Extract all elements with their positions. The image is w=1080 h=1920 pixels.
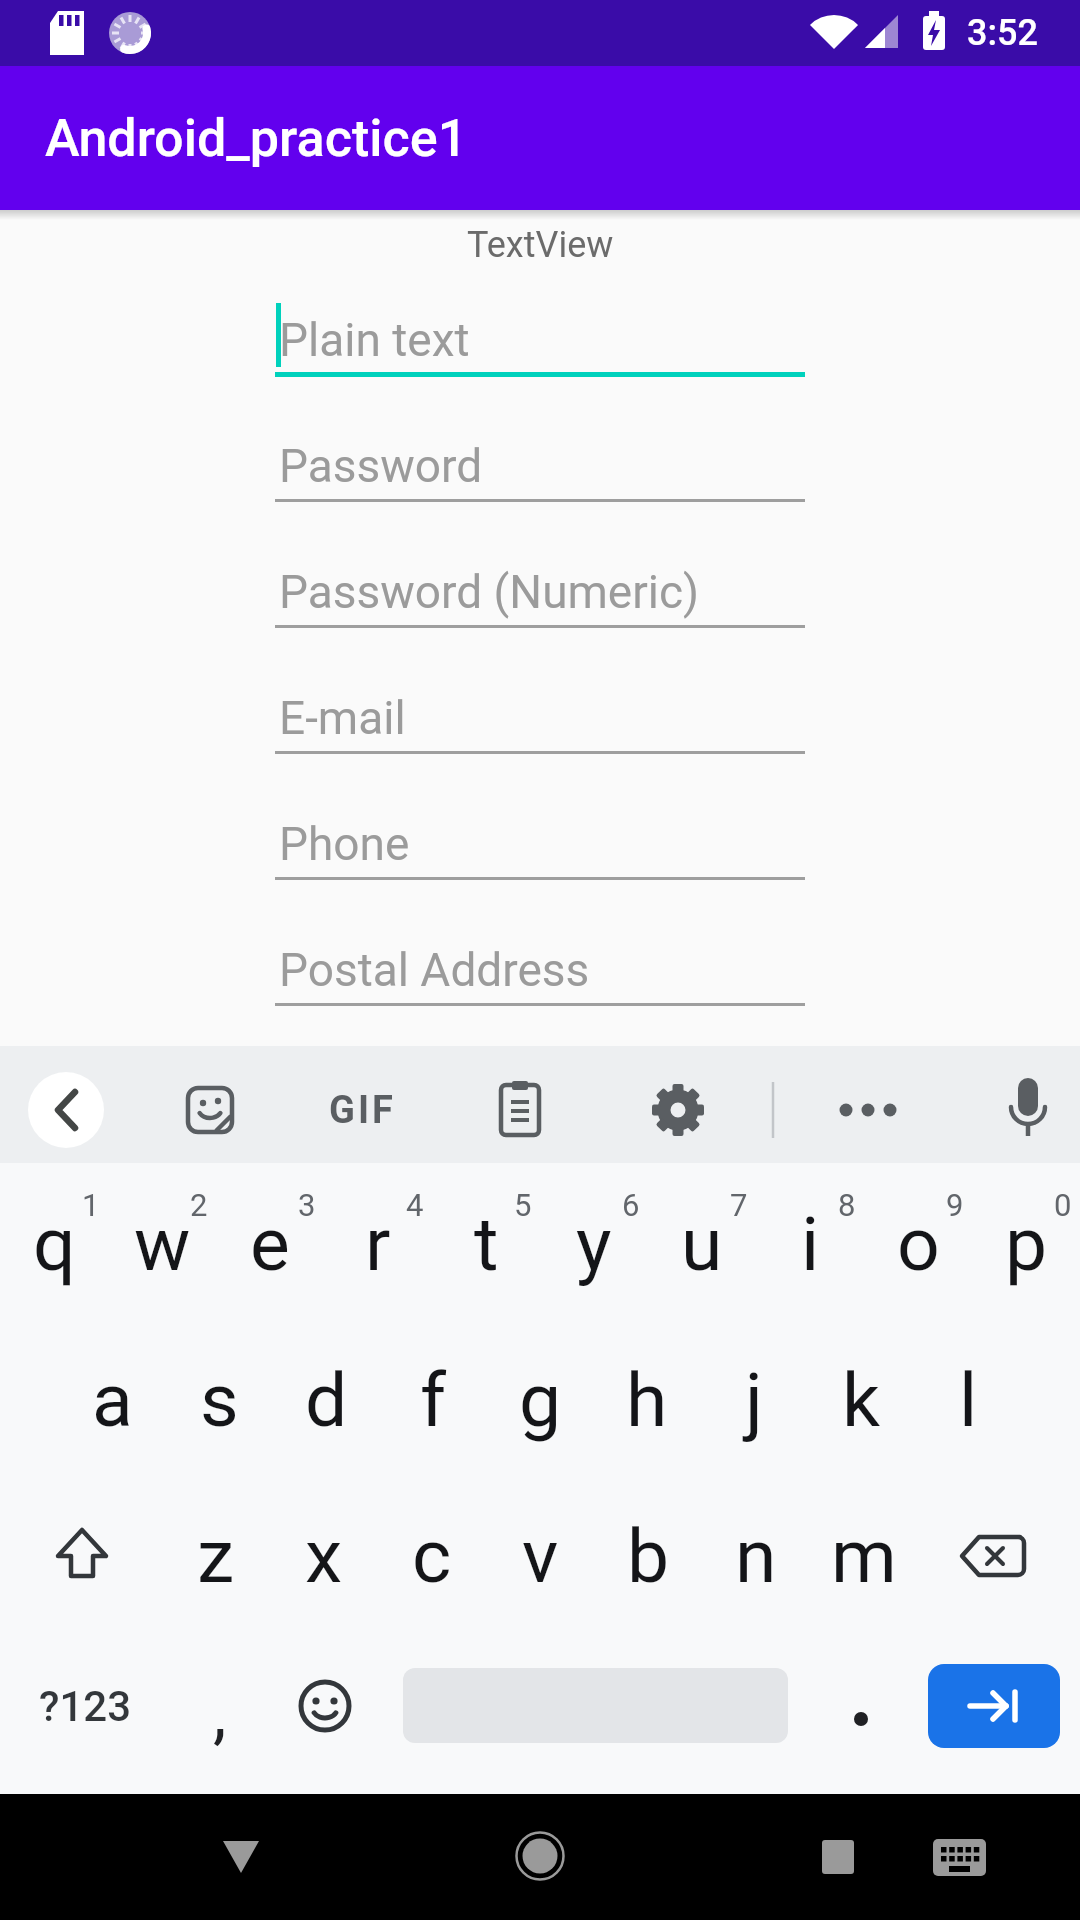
button[interactable]: m — [810, 1496, 918, 1616]
button[interactable]: w — [108, 1184, 216, 1304]
staticText: 5 — [514, 1187, 532, 1223]
button[interactable]: p — [972, 1184, 1080, 1304]
button[interactable]: f — [379, 1340, 487, 1460]
button[interactable]: z — [162, 1496, 270, 1616]
button[interactable]: j — [700, 1340, 808, 1460]
staticText: r — [365, 1200, 391, 1288]
staticText: 3:52 — [967, 12, 1038, 54]
staticText: 6 — [622, 1187, 640, 1223]
button[interactable]: u — [648, 1184, 756, 1304]
staticText: v — [522, 1512, 559, 1600]
staticText: 2 — [190, 1187, 208, 1223]
staticText: 7 — [730, 1187, 748, 1223]
staticText: n — [735, 1512, 777, 1600]
button[interactable]: Postal Address — [279, 927, 799, 997]
button[interactable] — [28, 1072, 104, 1148]
button[interactable]: o — [864, 1184, 972, 1304]
button[interactable]: Password — [279, 423, 799, 493]
staticText: y — [576, 1200, 612, 1288]
button[interactable]: k — [807, 1340, 915, 1460]
staticText: w — [134, 1200, 191, 1288]
button[interactable] — [486, 1802, 594, 1910]
staticText: 4 — [406, 1187, 424, 1223]
button[interactable]: GIF — [302, 1085, 422, 1135]
button[interactable]: i — [756, 1184, 864, 1304]
staticText: ?123 — [39, 1682, 132, 1731]
button[interactable]: x — [270, 1496, 378, 1616]
staticText: Password (Numeric) — [279, 565, 700, 619]
button[interactable]: d — [272, 1340, 380, 1460]
staticText: j — [745, 1356, 763, 1444]
staticText: TextView — [467, 224, 614, 266]
button[interactable]: e — [216, 1184, 324, 1304]
staticText: o — [897, 1200, 940, 1288]
staticText: Phone — [279, 817, 410, 871]
staticText: f — [420, 1356, 447, 1444]
button[interactable]: r — [324, 1184, 432, 1304]
button[interactable]: v — [486, 1496, 594, 1616]
staticText: t — [474, 1200, 499, 1288]
staticText: q — [33, 1200, 76, 1288]
staticText: Plain text — [279, 313, 470, 367]
button[interactable]: h — [593, 1340, 701, 1460]
staticText: 0 — [1054, 1187, 1072, 1223]
button[interactable] — [189, 1804, 297, 1912]
button[interactable]: t — [432, 1184, 540, 1304]
button[interactable] — [908, 1803, 1016, 1911]
staticText: 3 — [298, 1187, 316, 1223]
staticText: a — [92, 1356, 133, 1444]
button[interactable]: E-mail — [279, 675, 799, 745]
button[interactable]: Plain text — [279, 297, 799, 367]
button[interactable]: , — [190, 1673, 250, 1753]
staticText: Password — [279, 439, 483, 493]
staticText: Android_practice1 — [45, 108, 468, 169]
staticText: c — [412, 1512, 452, 1600]
staticText: x — [305, 1512, 343, 1600]
staticText: g — [519, 1356, 562, 1444]
button[interactable]: b — [594, 1496, 702, 1616]
button[interactable]: ?123 — [15, 1671, 155, 1741]
staticText: m — [831, 1512, 897, 1600]
staticText: u — [681, 1200, 723, 1288]
staticText: 1 — [82, 1187, 100, 1223]
staticText: z — [197, 1512, 235, 1600]
staticText: e — [250, 1200, 290, 1288]
staticText: h — [626, 1356, 668, 1444]
staticText: E-mail — [279, 691, 406, 745]
staticText: s — [200, 1356, 239, 1444]
button[interactable]: n — [702, 1496, 810, 1616]
staticText: d — [305, 1356, 348, 1444]
button[interactable] — [928, 1664, 1060, 1748]
staticText: i — [801, 1200, 820, 1288]
button[interactable]: g — [486, 1340, 594, 1460]
button[interactable]: l — [914, 1340, 1022, 1460]
button[interactable] — [781, 1802, 889, 1910]
staticText: k — [842, 1356, 881, 1444]
staticText: 8 — [838, 1187, 856, 1223]
staticText: b — [627, 1512, 670, 1600]
button[interactable]: a — [58, 1340, 166, 1460]
button[interactable]: q — [0, 1184, 108, 1304]
button[interactable]: Phone — [279, 801, 799, 871]
button[interactable]: Password (Numeric) — [279, 549, 799, 619]
staticText: GIF — [329, 1088, 396, 1133]
staticText: Postal Address — [279, 943, 590, 997]
button[interactable]: y — [540, 1184, 648, 1304]
staticText: , — [213, 1673, 227, 1753]
button[interactable]: s — [165, 1340, 273, 1460]
staticText: l — [959, 1356, 978, 1444]
button[interactable]: c — [378, 1496, 486, 1616]
staticText: p — [1005, 1200, 1048, 1288]
staticText: 9 — [946, 1187, 964, 1223]
